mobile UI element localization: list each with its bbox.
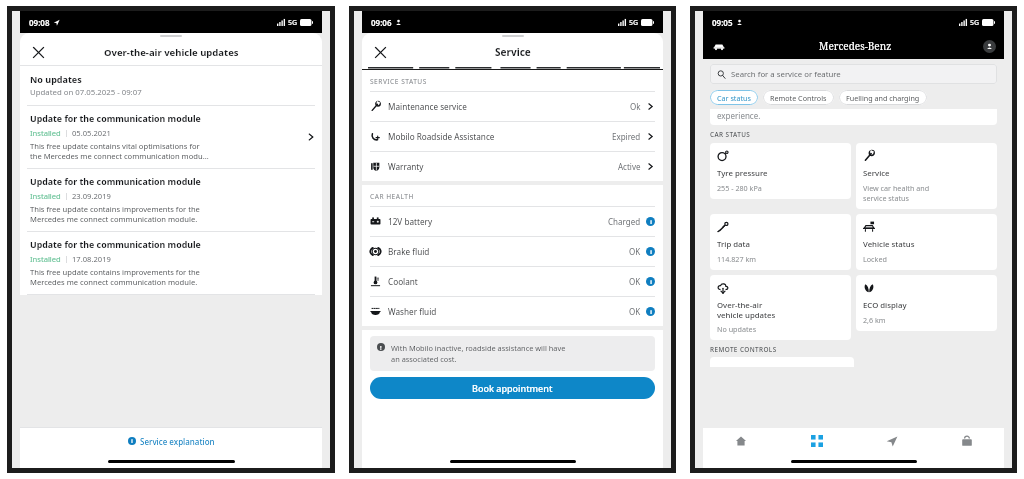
staticText: Ok	[630, 101, 641, 112]
staticText: View car health and service status	[863, 183, 930, 203]
staticText: OK	[629, 306, 641, 317]
staticText: SERVICE STATUS	[370, 77, 427, 86]
button[interactable]: ECO display	[856, 275, 997, 331]
staticText: Brake fluid	[388, 246, 430, 257]
staticText: 17.08.2019	[72, 254, 111, 264]
staticText: Over-the-air vehicle updates	[104, 46, 239, 59]
button[interactable]: Update for the communication module	[20, 169, 322, 231]
staticText: 09:08	[29, 17, 50, 28]
staticText: Installed	[30, 254, 61, 264]
staticText: Update for the communication module	[30, 239, 201, 251]
button[interactable]: Maintenance service	[362, 92, 663, 121]
staticText: 5G	[970, 18, 980, 28]
button[interactable]: Warranty	[362, 152, 663, 181]
button[interactable]: Car status	[710, 90, 758, 105]
button[interactable]: Trip data	[710, 214, 851, 270]
staticText: REMOTE CONTROLS	[710, 345, 777, 354]
staticText: i	[650, 278, 652, 286]
staticText: i	[650, 308, 652, 316]
staticText: 09:06	[371, 17, 392, 28]
button[interactable]: Shop	[929, 428, 1004, 454]
button[interactable]: Washer fluid	[362, 297, 663, 326]
button[interactable]: Mobilo Roadside Assistance	[362, 122, 663, 151]
staticText: Washer fluid	[388, 306, 437, 317]
staticText: Update for the communication module	[30, 176, 201, 188]
staticText: Service explanation	[140, 436, 215, 447]
staticText: experience.	[717, 110, 761, 121]
staticText: Mercedes-Benz	[819, 39, 892, 53]
staticText: This free update contains improvements f…	[30, 204, 200, 224]
staticText: Installed	[30, 191, 61, 201]
button[interactable]: 12V battery	[362, 207, 663, 236]
staticText: Service	[863, 168, 890, 179]
staticText: CAR HEALTH	[370, 192, 414, 201]
staticText: Updated on 07.05.2025 - 09:07	[30, 87, 142, 98]
staticText: i	[650, 218, 652, 226]
staticText: No updates	[30, 73, 82, 85]
staticText: 5G	[288, 18, 298, 28]
staticText: Mobilo Roadside Assistance	[388, 131, 495, 142]
button[interactable]: Vehicle status	[856, 214, 997, 270]
button[interactable]: Fuelling and charging	[839, 90, 927, 105]
button[interactable]: Home	[703, 428, 779, 454]
button[interactable]: Close	[29, 43, 47, 61]
staticText: Car status	[717, 93, 751, 103]
staticText: Over-the-air vehicle updates	[717, 300, 776, 320]
staticText: Locked	[863, 254, 887, 264]
staticText: !	[380, 344, 382, 351]
button[interactable]: Tyre pressure	[710, 143, 851, 199]
button[interactable]: No updates	[20, 66, 322, 105]
staticText: 05.05.2021	[72, 128, 111, 138]
staticText: 09:05	[712, 17, 733, 28]
button[interactable]: Remote Controls	[763, 90, 834, 105]
staticText: Warranty	[388, 161, 424, 172]
button[interactable]: Update for the communication module	[20, 232, 322, 294]
staticText: Expired	[612, 131, 641, 142]
button[interactable]: i	[20, 428, 322, 454]
staticText: 5G	[629, 18, 639, 28]
staticText: 255 - 280 kPa	[717, 183, 762, 193]
staticText: This free update contains vital optimisa…	[30, 141, 209, 161]
staticText: Service	[495, 45, 531, 59]
staticText: 114.827 km	[717, 254, 757, 264]
staticText: Charged	[608, 216, 641, 227]
staticText: This free update contains improvements f…	[30, 267, 200, 287]
button[interactable]: Dashboard	[779, 428, 854, 454]
button[interactable]: Brake fluid	[362, 237, 663, 266]
staticText: OK	[629, 276, 641, 287]
button[interactable]: Coolant	[362, 267, 663, 296]
button[interactable]: Book appointment	[370, 377, 655, 399]
staticText: 2,6 km	[863, 315, 886, 325]
staticText: Update for the communication module	[30, 113, 201, 125]
staticText: Installed	[30, 128, 61, 138]
staticText: Book appointment	[472, 382, 553, 394]
button[interactable]: Profile	[983, 40, 996, 53]
button[interactable]: Navigation	[854, 428, 929, 454]
staticText: No updates	[717, 324, 757, 334]
button[interactable]: Close	[371, 43, 389, 61]
button[interactable]: Service	[856, 143, 997, 209]
staticText: 23.09.2019	[72, 191, 111, 201]
staticText: Search for a service or feature	[731, 69, 841, 80]
staticText: OK	[629, 246, 641, 257]
staticText: ECO display	[863, 300, 907, 311]
staticText: Trip data	[717, 239, 750, 250]
staticText: i	[650, 248, 652, 256]
staticText: Vehicle status	[863, 239, 915, 250]
staticText: CAR STATUS	[710, 130, 751, 139]
staticText: Coolant	[388, 276, 418, 287]
staticText: With Mobilo inactive, roadside assistanc…	[391, 343, 566, 364]
button[interactable]: Update for the communication module	[20, 106, 322, 168]
staticText: i	[131, 438, 133, 445]
staticText: Fuelling and charging	[846, 93, 920, 103]
staticText: Maintenance service	[388, 101, 467, 112]
button[interactable]: Vehicle	[711, 38, 727, 54]
staticText: 12V battery	[388, 216, 433, 227]
staticText: Remote Controls	[770, 93, 827, 103]
button[interactable]: Search for a service or feature	[710, 64, 997, 84]
staticText: Tyre pressure	[717, 168, 768, 179]
staticText: Active	[618, 161, 641, 172]
button[interactable]: Over-the-air vehicle updates	[710, 275, 851, 340]
